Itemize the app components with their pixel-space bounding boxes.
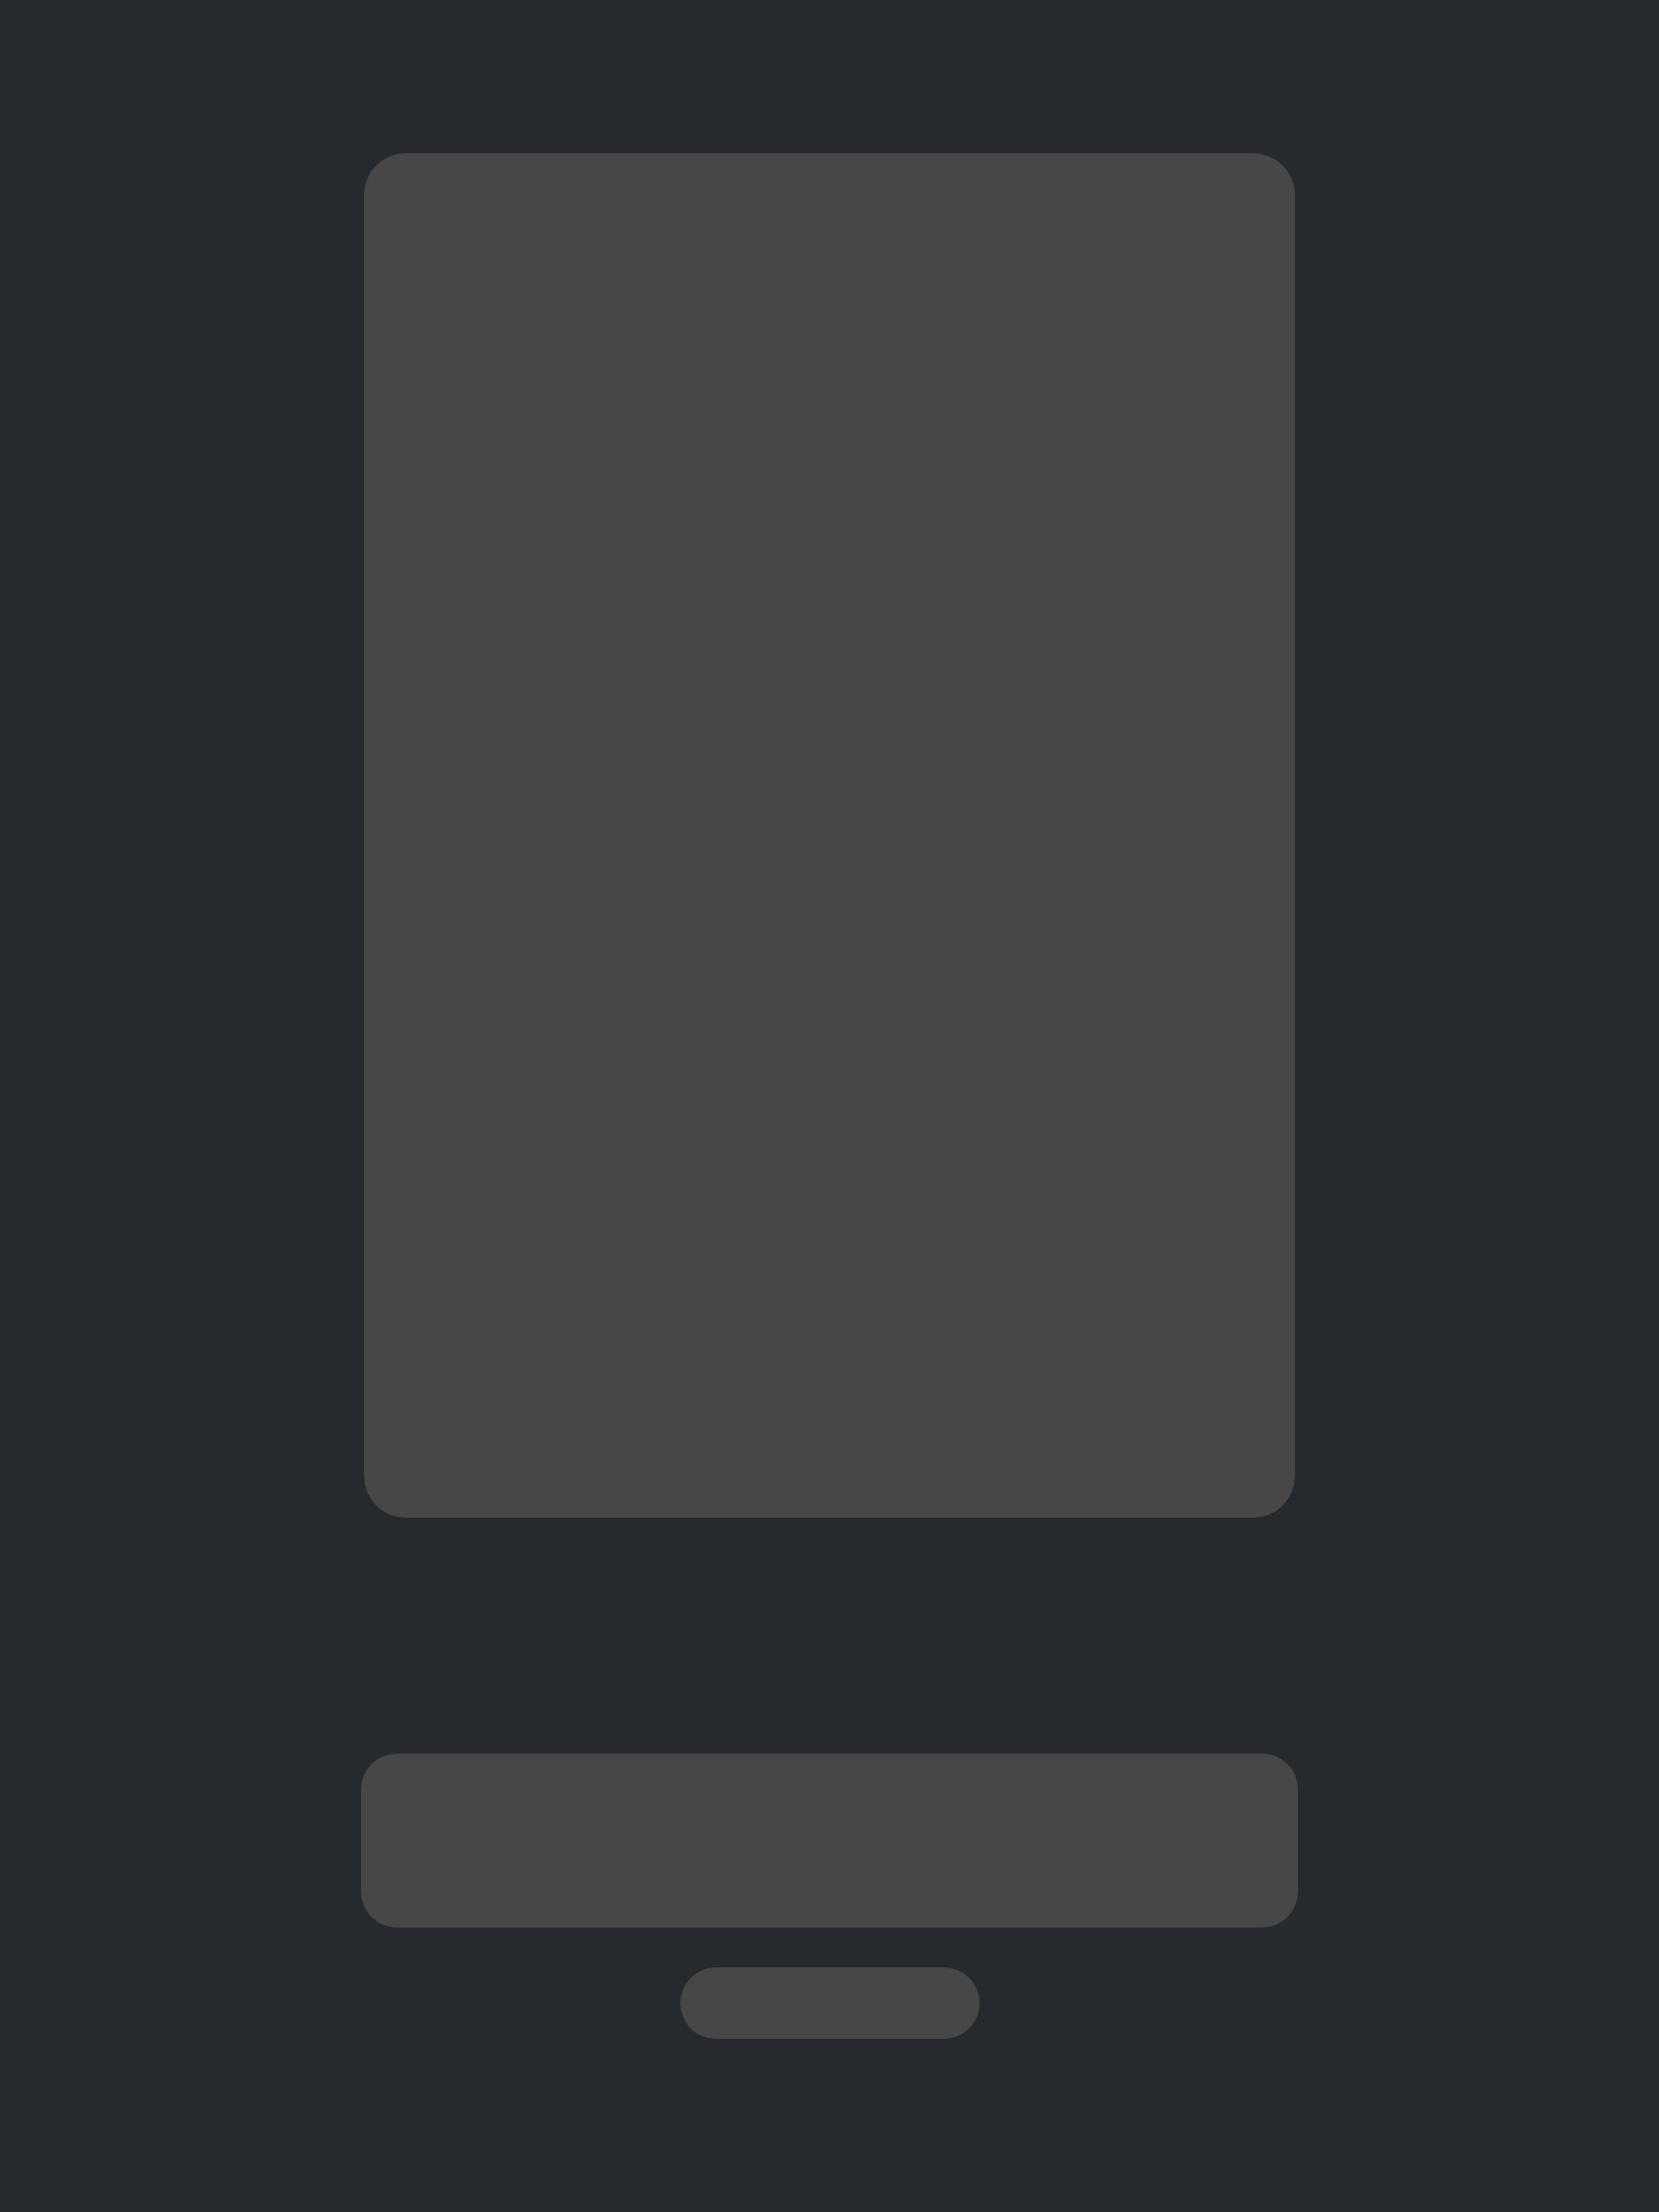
button[interactable]: Subtitle placeholder — [680, 1967, 980, 2039]
button[interactable]: Title placeholder — [361, 1753, 1298, 1928]
